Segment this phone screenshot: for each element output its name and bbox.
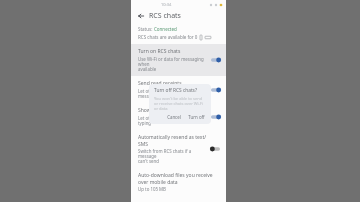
button[interactable]: Toggle on [210, 86, 221, 94]
staticText: RCS chats [149, 11, 181, 21]
staticText: Turn on RCS chats [138, 48, 181, 55]
button[interactable]: Toggle off [210, 145, 221, 153]
staticText: Send read receipts [138, 80, 182, 87]
button[interactable]: Back [136, 11, 146, 21]
staticText: Show typing indicators [138, 107, 192, 114]
staticText: Turn off RCS chats? [154, 87, 198, 94]
staticText: Let others know you've read their messag… [138, 88, 207, 99]
staticText: Let others know when you're typing [138, 115, 207, 126]
button[interactable]: Turn off [186, 112, 207, 122]
staticText: Auto-download files you receive over mob… [138, 172, 221, 185]
button[interactable]: Toggle on [210, 113, 221, 121]
staticText: RCS chats are available for 0 [138, 34, 199, 40]
button[interactable]: Send read receipts [131, 76, 226, 103]
staticText: Cancel [167, 114, 181, 120]
staticText: Status: [138, 26, 154, 32]
staticText: Switch from RCS chats if a message can't… [138, 148, 207, 164]
staticText: You won't be able to send or receive cha… [154, 96, 207, 111]
button[interactable]: Cancel [165, 112, 183, 122]
button[interactable]: Automatically resend as text/SMS [131, 130, 226, 168]
button[interactable]: Toggle on [210, 56, 221, 64]
staticText: Up to 105 MB [138, 186, 166, 192]
button[interactable]: Show typing indicators [131, 103, 226, 130]
staticText: Connected [154, 26, 177, 32]
staticText: 10:34 [161, 2, 172, 7]
button[interactable]: Auto-download files you receive over mob… [131, 168, 226, 196]
staticText: Use Wi-Fi or data for messaging when ava… [138, 56, 207, 72]
staticText: Automatically resend as text/SMS [138, 134, 207, 147]
button[interactable]: Turn on RCS chats [131, 44, 226, 76]
staticText: Turn off [188, 114, 205, 120]
